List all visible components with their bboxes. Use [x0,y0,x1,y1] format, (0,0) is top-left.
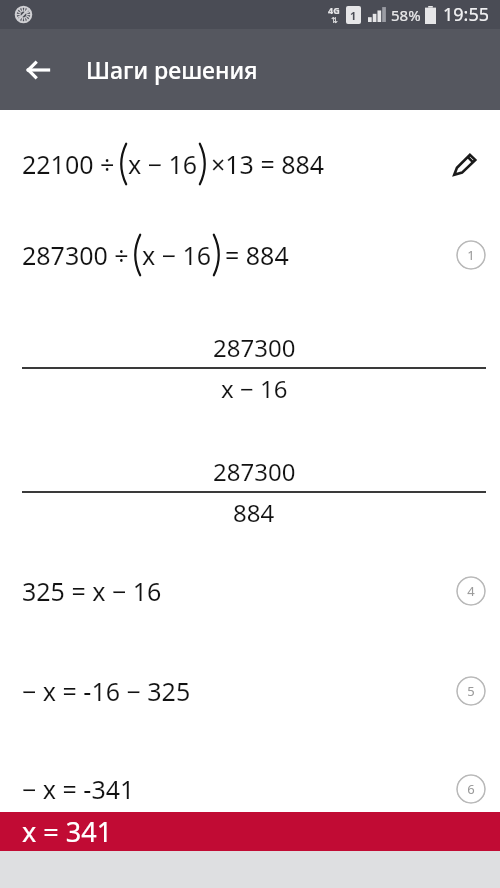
button[interactable]: − x = -341 [0,766,500,812]
staticText: 1 [350,8,357,23]
button[interactable]: Back [14,46,62,94]
staticText: 4G [328,4,340,16]
staticText: 325 = x − 16 [22,574,162,608]
staticText: 6 [467,780,475,798]
button[interactable]: 1 [456,240,486,270]
staticText: 4 [467,582,475,600]
button[interactable]: 22100 ÷ [0,138,500,190]
staticText: 5 [467,682,475,700]
button[interactable]: 325 = x − 16 [0,568,500,614]
staticText: ×13 = 884 [211,147,325,181]
staticText: − x = -16 − 325 [22,674,191,708]
staticText: 287300 ÷ [22,238,129,272]
button[interactable]: 287300 [0,322,500,414]
staticText: 19:55 [443,2,490,27]
button[interactable]: 6 [456,774,486,804]
staticText: 1 [467,246,475,264]
button[interactable]: Edit [442,142,486,186]
staticText: x − 16 [142,238,212,272]
button[interactable]: 4 [456,576,486,606]
staticText: x − 16 [221,372,288,405]
button[interactable]: − x = -16 − 325 [0,668,500,714]
staticText: Шаги решения [86,54,258,85]
staticText: 884 [233,496,275,529]
button[interactable]: 287300 ÷ [0,232,500,278]
staticText: 287300 [213,455,296,488]
staticText: x − 16 [128,147,198,181]
staticText: 58% [391,5,421,25]
button[interactable]: 287300 [0,446,500,538]
staticText: − x = -341 [22,772,135,806]
button[interactable]: 5 [456,676,486,706]
staticText: 22100 ÷ [22,147,115,181]
staticText: ⇅ [331,16,338,25]
staticText: = 884 [225,238,289,272]
button[interactable]: x = 341 [0,812,500,851]
staticText: 287300 [213,331,296,364]
staticText: x = 341 [22,813,113,850]
